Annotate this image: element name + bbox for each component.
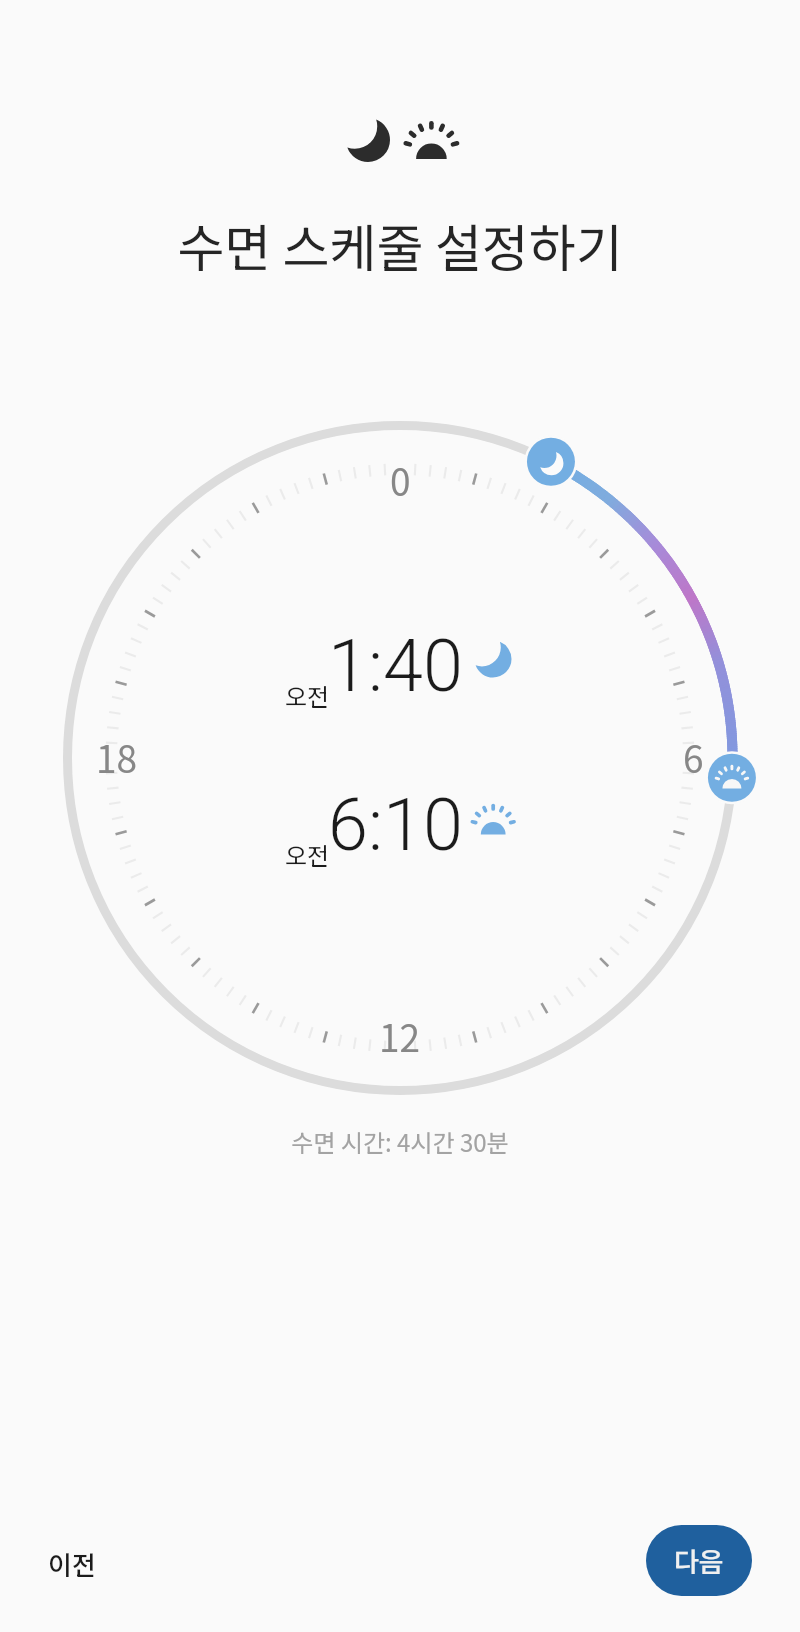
staticText: 이전 [48,1545,96,1583]
other: Sleep and wake up [340,112,464,168]
staticText: 18 [96,730,138,784]
staticText: 1:40 [328,624,463,708]
button[interactable]: 다음 [646,1525,752,1596]
button[interactable]: 이전 [32,1531,112,1597]
staticText: 6 [683,730,704,784]
button[interactable]: Wake up time handle [706,752,758,804]
staticText: 오전 [285,837,330,872]
button[interactable]: Bedtime handle [525,436,577,488]
staticText: 오전 [285,678,330,713]
staticText: 12 [379,1009,421,1063]
button[interactable] [276,801,528,875]
staticText: 0 [390,453,411,507]
button[interactable] [276,642,528,716]
staticText: 수면 스케줄 설정하기 [0,208,800,282]
staticText: 다음 [674,1541,724,1580]
staticText: 6:10 [328,783,463,867]
staticText: 수면 시간: 4시간 30분 [0,1124,800,1159]
